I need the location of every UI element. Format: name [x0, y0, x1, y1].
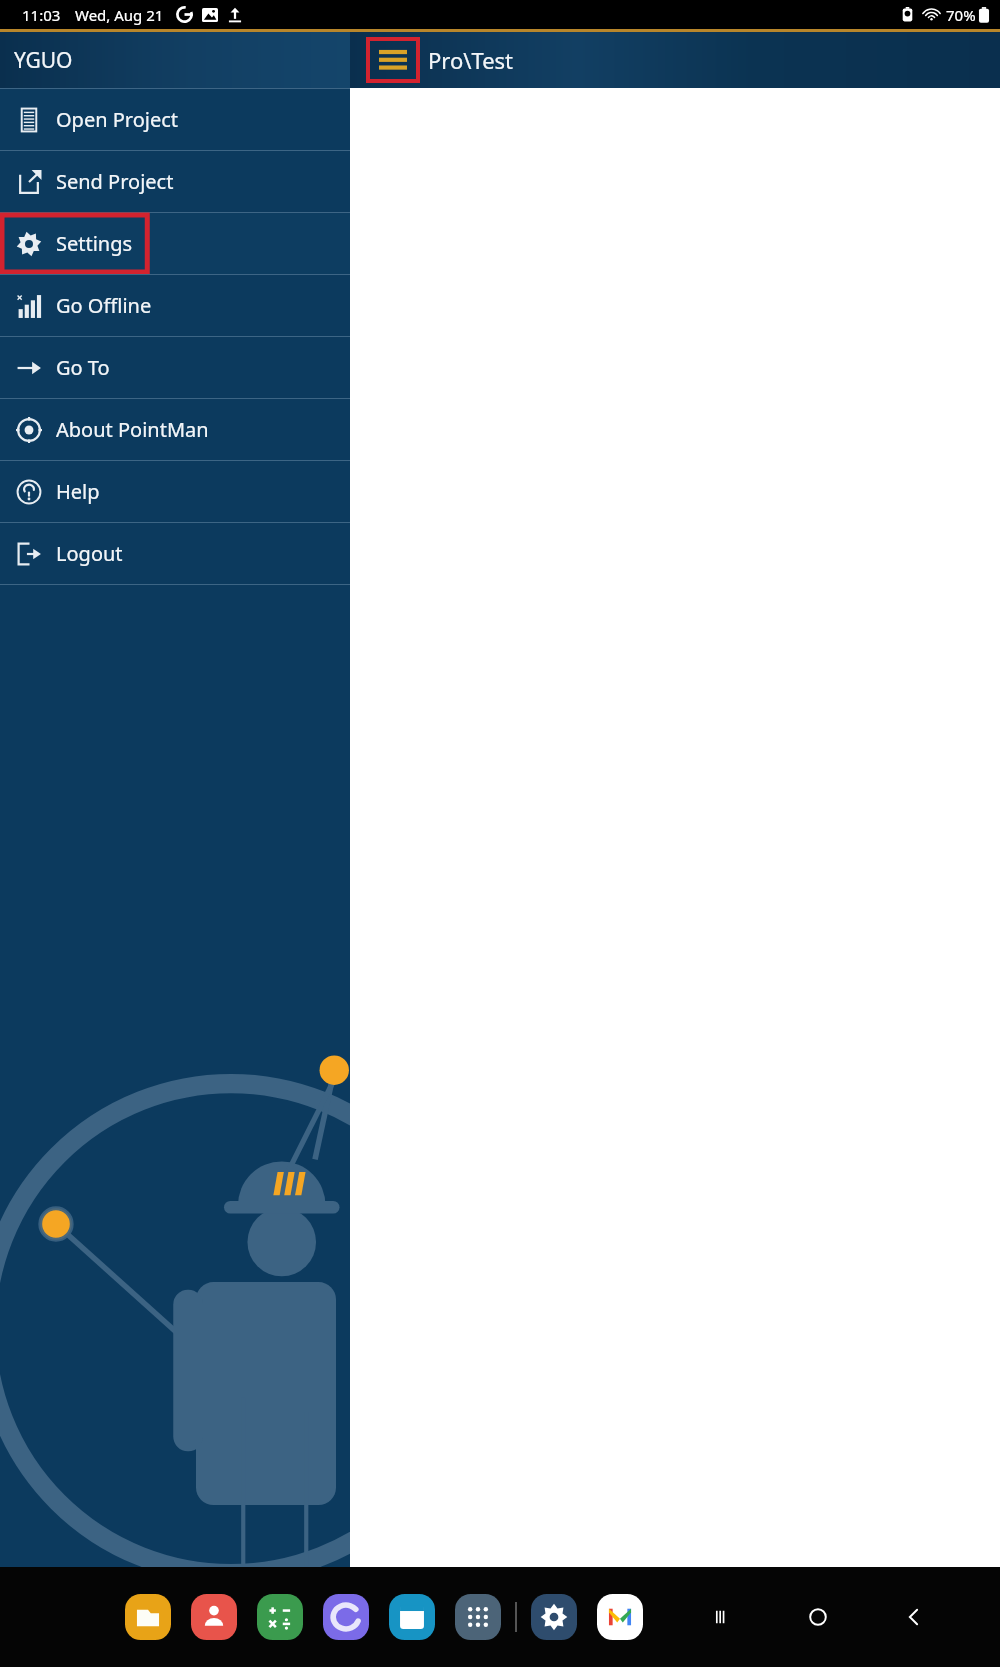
- button[interactable]: Settings: [0, 213, 350, 274]
- button[interactable]: Go To: [0, 337, 350, 398]
- button[interactable]: About PointMan: [0, 399, 350, 460]
- button[interactable]: samsung: [323, 1594, 369, 1640]
- button[interactable]: calc: [257, 1594, 303, 1640]
- staticText: YGUO: [14, 46, 73, 75]
- staticText: Wed, Aug 21: [75, 5, 164, 25]
- button[interactable]: Help: [0, 461, 350, 522]
- staticText: Settings: [56, 230, 133, 257]
- button[interactable]: gmail: [597, 1594, 643, 1640]
- staticText: Open Project: [56, 106, 179, 133]
- staticText: Logout: [56, 540, 123, 567]
- button[interactable]: Go Offline: [0, 275, 350, 336]
- button[interactable]: settings: [531, 1594, 577, 1640]
- button[interactable]: files: [125, 1594, 171, 1640]
- button[interactable]: Open navigation menu: [368, 39, 418, 81]
- button[interactable]: Home: [792, 1591, 844, 1643]
- staticText: Go Offline: [56, 292, 152, 319]
- button[interactable]: Open Project: [0, 89, 350, 150]
- staticText: Go To: [56, 354, 110, 381]
- button[interactable]: contacts: [191, 1594, 237, 1640]
- button[interactable]: Recent apps: [696, 1591, 748, 1643]
- button[interactable]: Back: [888, 1591, 940, 1643]
- staticText: About PointMan: [56, 416, 209, 443]
- button[interactable]: calendar: [389, 1594, 435, 1640]
- staticText: Send Project: [56, 168, 174, 195]
- button[interactable]: apps: [455, 1594, 501, 1640]
- staticText: Pro\Test: [428, 45, 514, 75]
- button[interactable]: Send Project: [0, 151, 350, 212]
- staticText: Help: [56, 478, 100, 505]
- button[interactable]: Logout: [0, 523, 350, 584]
- staticText: 70%: [946, 5, 976, 25]
- staticText: 11:03: [22, 5, 61, 25]
